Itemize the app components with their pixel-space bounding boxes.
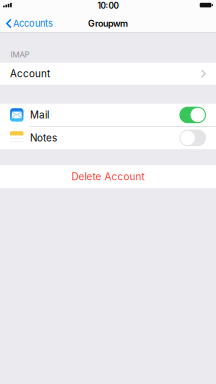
- staticText: Notes: [30, 132, 57, 144]
- staticText: Account: [10, 68, 50, 80]
- staticText: IMAP: [11, 50, 30, 59]
- staticText: Accounts: [13, 18, 53, 29]
- staticText: 10:00: [97, 1, 118, 11]
- button[interactable]: Delete Account: [0, 165, 216, 188]
- button[interactable]: Accounts: [0, 15, 53, 32]
- staticText: Delete Account: [71, 171, 144, 183]
- staticText: Mail: [30, 109, 49, 121]
- staticText: Groupwm: [88, 18, 128, 29]
- button[interactable]: Account: [0, 63, 216, 85]
